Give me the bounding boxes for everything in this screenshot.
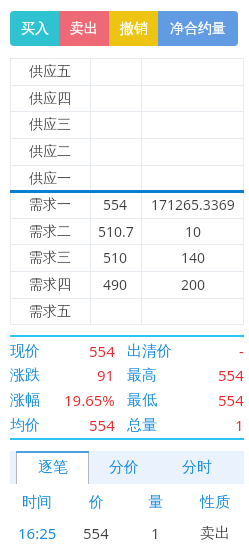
staticText: 需求四 [29, 276, 71, 294]
staticText: 554 [83, 523, 109, 543]
staticText: 净合约量 [170, 20, 226, 38]
staticText: 供应五 [29, 63, 71, 81]
staticText: 200 [181, 275, 206, 294]
staticText: 逐笔 [38, 458, 68, 477]
staticText: 10 [185, 222, 202, 241]
staticText: 供应三 [29, 116, 71, 134]
staticText: 554 [89, 341, 115, 361]
staticText: 供应二 [29, 143, 71, 161]
staticText: 价 [89, 493, 104, 512]
staticText: 均价 [10, 416, 40, 435]
staticText: 510 [103, 248, 128, 267]
staticText: 16:25 [18, 523, 57, 543]
staticText: 需求一 [29, 196, 71, 214]
staticText: 涨跌 [10, 366, 40, 385]
staticText: 1 [151, 523, 160, 543]
staticText: 554 [103, 195, 128, 214]
staticText: 171265.3369 [151, 195, 235, 214]
staticText: 供应四 [29, 90, 71, 108]
staticText: 买入 [21, 20, 49, 38]
staticText: 19.65% [64, 390, 115, 410]
staticText: 供应一 [29, 170, 71, 188]
staticText: 需求三 [29, 249, 71, 267]
button[interactable]: 分价 [94, 451, 154, 484]
staticText: 总量 [127, 416, 157, 435]
staticText: 分价 [109, 458, 139, 477]
staticText: - [239, 341, 244, 361]
button[interactable]: 分时 [167, 451, 227, 484]
staticText: 需求二 [29, 223, 71, 241]
staticText: 时间 [22, 493, 52, 512]
staticText: 分时 [182, 458, 212, 477]
staticText: 出清价 [127, 342, 172, 361]
staticText: 卖出 [200, 524, 230, 543]
staticText: 需求五 [29, 303, 71, 321]
button[interactable]: 逐笔 [16, 451, 89, 484]
button[interactable]: 撤销 [109, 11, 158, 46]
staticText: 最低 [127, 391, 157, 410]
staticText: 撤销 [120, 20, 148, 38]
staticText: 性质 [200, 493, 230, 512]
button[interactable]: 卖出 [59, 11, 109, 46]
staticText: 490 [103, 275, 128, 294]
staticText: 510.7 [98, 222, 134, 241]
staticText: 554 [89, 415, 115, 435]
staticText: 554 [218, 365, 244, 385]
staticText: 现价 [10, 342, 40, 361]
staticText: 91 [97, 365, 115, 385]
button[interactable]: 买入 [10, 11, 59, 46]
staticText: 140 [181, 248, 206, 267]
staticText: 554 [218, 390, 244, 410]
staticText: 涨幅 [10, 391, 40, 410]
staticText: 最高 [127, 366, 157, 385]
staticText: 卖出 [70, 20, 98, 38]
staticText: 量 [148, 493, 163, 512]
staticText: 1 [235, 415, 244, 435]
button[interactable]: 净合约量 [158, 11, 238, 46]
